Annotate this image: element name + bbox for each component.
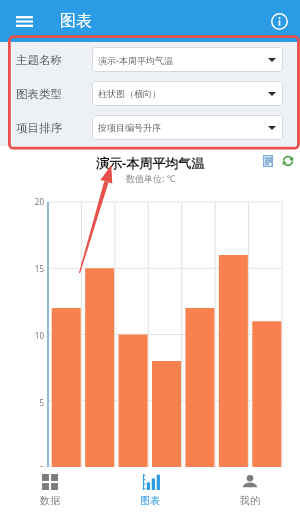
button[interactable]: 柱状图（横向） (92, 81, 283, 106)
button[interactable]: Info (262, 0, 296, 42)
button[interactable]: Refresh (281, 154, 295, 168)
staticText: 5 (25, 397, 44, 408)
button[interactable]: Menu (7, 0, 41, 42)
button[interactable]: 按项目编号升序 (92, 115, 283, 140)
button[interactable]: 图表 (100, 467, 200, 513)
staticText: 图表 (60, 11, 92, 31)
staticText: 演示-本周平均气温 (96, 154, 205, 172)
button[interactable]: 演示-本周平均气温 (92, 47, 283, 72)
staticText: 项目排序 (16, 121, 92, 135)
staticText: 演示-本周平均气温 (98, 54, 268, 66)
staticText: 15 (25, 263, 44, 274)
button[interactable]: 数据 (0, 467, 100, 513)
staticText: 10 (25, 330, 44, 341)
staticText: 数值单位: ℃ (126, 172, 176, 184)
button[interactable]: Data table (261, 154, 275, 168)
staticText: 主题名称 (16, 53, 92, 67)
staticText: 图表类型 (16, 87, 92, 101)
staticText: 按项目编号升序 (98, 122, 268, 133)
staticText: 柱状图（横向） (98, 88, 268, 99)
staticText: 我的 (240, 494, 260, 507)
staticText: 数据 (40, 494, 60, 507)
staticText: 图表 (140, 494, 160, 507)
staticText: 0 (25, 464, 44, 475)
staticText: 20 (25, 196, 44, 207)
button[interactable]: 我的 (200, 467, 300, 513)
